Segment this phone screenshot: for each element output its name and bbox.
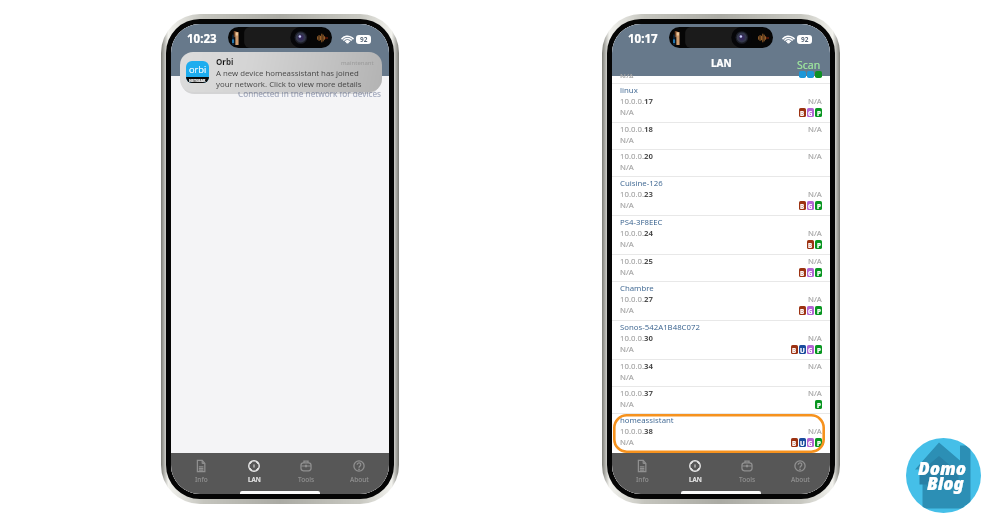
staticText: P	[817, 202, 821, 210]
staticText: Cuisine-126	[620, 178, 663, 189]
staticText: B	[800, 269, 805, 277]
button[interactable]: Cuisine-126	[612, 177, 830, 215]
staticText: P	[817, 346, 821, 354]
staticText: Info	[195, 475, 208, 484]
button[interactable]: Scan	[797, 58, 830, 76]
staticText: P	[817, 307, 821, 315]
staticText: B	[808, 241, 813, 249]
staticText: B	[792, 439, 797, 447]
button[interactable]: 10.0.0.20	[612, 150, 830, 176]
staticText: 10.0.0.37	[620, 388, 654, 399]
button[interactable]: Tools	[725, 455, 769, 484]
staticText: P	[817, 401, 821, 409]
staticText: About	[791, 475, 810, 484]
staticText: N/A	[620, 239, 634, 250]
staticText: N/A	[620, 344, 634, 355]
button[interactable]: homeassistant	[612, 414, 830, 452]
staticText: B	[792, 346, 797, 354]
button[interactable]: LAN	[673, 455, 717, 484]
staticText: Blog	[927, 472, 964, 495]
staticText: B	[800, 202, 805, 210]
button[interactable]: 10.0.0.18	[612, 123, 830, 149]
staticText: Info	[636, 475, 649, 484]
staticText: 92	[360, 35, 368, 44]
staticText: N/A	[808, 189, 822, 200]
staticText: Connected in the network for devices	[238, 88, 382, 99]
staticText: 10.0.0.27	[620, 294, 654, 305]
staticText: G	[808, 439, 813, 447]
staticText: N/A	[808, 426, 822, 437]
staticText: N/A	[620, 399, 634, 410]
staticText: N/A	[620, 437, 634, 448]
staticText: 10.0.0.38	[620, 426, 654, 437]
button[interactable]: orbi	[180, 52, 382, 92]
staticText: P	[817, 109, 821, 117]
staticText: Domo	[918, 457, 967, 480]
staticText: N/A	[808, 256, 822, 267]
staticText: N/A	[620, 267, 634, 278]
staticText: 10.0.0.18	[620, 124, 654, 135]
staticText: homeassistant	[620, 415, 674, 426]
button[interactable]: Sonos-542A1B48C072	[612, 321, 830, 359]
staticText: 10.0.0.24	[620, 228, 654, 239]
staticText: N/A	[620, 162, 634, 173]
staticText: Orbi	[216, 56, 234, 67]
staticText: Scan	[797, 58, 821, 72]
staticText: N/A	[620, 107, 634, 118]
staticText: P	[817, 241, 821, 249]
staticText: U	[800, 346, 805, 354]
staticText: 10:23	[187, 31, 217, 47]
staticText: LAN	[248, 475, 261, 484]
staticText: linux	[620, 85, 638, 96]
staticText: N/A	[808, 333, 822, 344]
button[interactable]: linux	[612, 84, 830, 122]
staticText: Chambre	[620, 283, 654, 294]
staticText: N/A	[808, 388, 822, 399]
staticText: B	[800, 307, 805, 315]
staticText: P	[817, 439, 821, 447]
staticText: Tools	[739, 475, 756, 484]
staticText: G	[808, 109, 813, 117]
staticText: 10.0.0.34	[620, 361, 654, 372]
staticText: About	[350, 475, 369, 484]
staticText: 10.0.0.20	[620, 151, 654, 162]
staticText: G	[808, 346, 813, 354]
staticText: N/A	[808, 361, 822, 372]
button[interactable]: Tools	[284, 455, 328, 484]
staticText: 92	[801, 35, 809, 44]
staticText: NETGEAR	[189, 78, 206, 83]
staticText: 10.0.0.17	[620, 96, 654, 107]
staticText: 10.0.0.25	[620, 256, 654, 267]
button[interactable]: LAN	[232, 455, 276, 484]
button[interactable]: About	[337, 455, 381, 484]
button[interactable]: PS4-3F8EEC	[612, 216, 830, 254]
staticText: N/A	[620, 200, 634, 211]
staticText: maintenant	[341, 59, 374, 67]
staticText: LAN	[711, 56, 732, 70]
button[interactable]: 10.0.0.34	[612, 360, 830, 386]
staticText: N/A	[808, 228, 822, 239]
staticText: G	[808, 202, 813, 210]
button[interactable]: 10.0.0.25	[612, 255, 830, 281]
staticText: 10:17	[628, 31, 658, 47]
staticText: G	[808, 307, 813, 315]
button[interactable]: About	[778, 455, 822, 484]
button[interactable]: Info	[620, 455, 664, 484]
staticText: LAN	[689, 475, 702, 484]
staticText: B	[800, 109, 805, 117]
staticText: N/A	[620, 135, 634, 146]
staticText: Tools	[298, 475, 315, 484]
button[interactable]: 10.0.0.37	[612, 387, 830, 413]
staticText: U	[800, 439, 805, 447]
staticText: N/A	[620, 71, 634, 78]
staticText: orbi	[189, 63, 207, 76]
staticText: N/A	[808, 96, 822, 107]
staticText: N/A	[620, 305, 634, 316]
staticText: Sonos-542A1B48C072	[620, 322, 700, 333]
staticText: N/A	[808, 151, 822, 162]
staticText: N/A	[808, 294, 822, 305]
button[interactable]: Info	[179, 455, 223, 484]
staticText: P	[817, 269, 821, 277]
staticText: 10.0.0.30	[620, 333, 654, 344]
button[interactable]: Chambre	[612, 282, 830, 320]
